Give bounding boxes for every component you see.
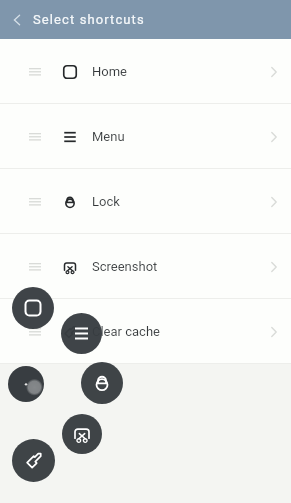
staticText: Menu [92, 129, 125, 144]
staticText: Home [92, 64, 127, 79]
button[interactable]: Lock [0, 169, 291, 234]
button[interactable]: Menu [0, 104, 291, 169]
staticText: Lock [92, 194, 120, 209]
button[interactable]: Screenshot [62, 414, 102, 454]
button[interactable]: Home [0, 39, 291, 104]
button[interactable]: Lock [81, 362, 123, 404]
button[interactable]: Home [12, 287, 54, 329]
staticText: Screenshot [92, 259, 158, 274]
button[interactable]: Back [4, 7, 30, 33]
staticText: Clear cache [92, 324, 160, 339]
button[interactable]: Menu [61, 313, 102, 354]
button[interactable]: Clear cache [12, 439, 55, 482]
button[interactable]: Power [8, 366, 44, 402]
button[interactable]: Clear cache [0, 299, 291, 364]
button[interactable]: Screenshot [0, 234, 291, 299]
staticText: Select shortcuts [33, 12, 145, 27]
